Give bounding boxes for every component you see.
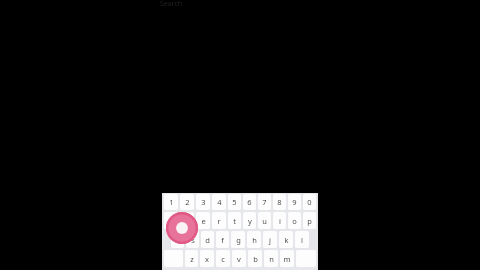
button[interactable]: j [263,231,277,248]
staticText: t [233,216,236,226]
button[interactable]: 4 [212,194,226,210]
staticText: j [269,235,271,245]
staticText: q [169,216,174,226]
staticText: o [292,216,297,226]
button[interactable]: w [180,212,194,229]
staticText: m [283,254,291,264]
staticText: 6 [247,197,252,207]
staticText: b [253,254,258,264]
button[interactable]: m [280,250,294,267]
staticText: w [184,216,190,226]
button[interactable]: h [247,231,261,248]
staticText: n [269,254,274,264]
button[interactable]: q [164,212,178,229]
button[interactable]: c [216,250,230,267]
staticText: k [284,235,289,245]
button[interactable]: n [264,250,278,267]
button[interactable]: g [231,231,245,248]
button[interactable]: 0 [303,194,316,210]
staticText: r [217,216,221,226]
button[interactable]: v [232,250,246,267]
button[interactable]: y [243,212,256,229]
staticText: 7 [262,197,267,207]
staticText: 1 [169,197,174,207]
staticText: p [307,216,312,226]
button[interactable]: 1 [164,194,178,210]
staticText: u [262,216,267,226]
button[interactable]: f [216,231,229,248]
button[interactable]: d [201,231,214,248]
staticText: c [221,254,225,264]
button[interactable]: u [258,212,271,229]
staticText: 3 [201,197,206,207]
staticText: h [252,235,257,245]
button[interactable]: t [228,212,241,229]
button[interactable]: 6 [243,194,256,210]
staticText: 2 [185,197,190,207]
button[interactable]: Search [160,0,183,9]
staticText: a [175,235,180,245]
button[interactable]: z [185,250,198,267]
staticText: e [201,216,206,226]
staticText: d [205,235,210,245]
button[interactable]: e [196,212,210,229]
staticText: 4 [217,197,222,207]
button[interactable]: s [186,231,199,248]
button[interactable]: p [303,212,316,229]
staticText: 5 [232,197,237,207]
staticText: g [236,235,241,245]
button[interactable]: o [288,212,301,229]
staticText: s [191,235,195,245]
button[interactable]: 7 [258,194,271,210]
button[interactable]: a [171,231,184,248]
button[interactable]: x [200,250,214,267]
button[interactable]: Key press indicator [166,212,198,244]
button[interactable]: l [295,231,309,248]
staticText: v [237,254,241,264]
staticText: 0 [307,197,312,207]
staticText: 8 [277,197,282,207]
button[interactable]: 2 [180,194,194,210]
staticText: i [279,216,281,226]
staticText: f [221,235,224,245]
button[interactable]: b [248,250,262,267]
staticText: l [301,235,303,245]
button[interactable]: 8 [273,194,286,210]
button[interactable]: 3 [196,194,210,210]
staticText: z [190,254,194,264]
button[interactable]: i [273,212,286,229]
staticText: Search [160,0,183,9]
button[interactable]: k [279,231,293,248]
button[interactable]: r [212,212,226,229]
staticText: x [205,254,209,264]
button[interactable]: 9 [288,194,301,210]
button[interactable]: 5 [228,194,241,210]
staticText: y [248,216,252,226]
staticText: 9 [292,197,297,207]
